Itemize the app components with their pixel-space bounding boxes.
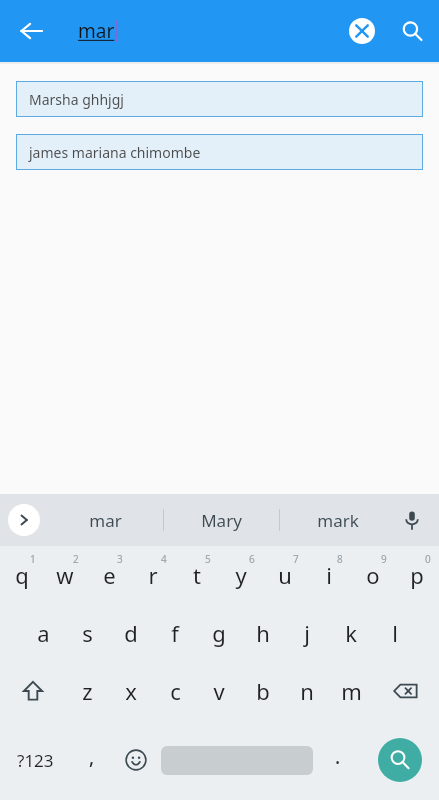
staticText: e: [103, 560, 116, 590]
button[interactable]: Period: [316, 720, 360, 800]
staticText: k: [345, 618, 357, 648]
button[interactable]: Space: [158, 720, 316, 800]
button[interactable]: x: [109, 662, 153, 720]
button[interactable]: a: [21, 604, 65, 662]
button[interactable]: Backspace: [373, 662, 439, 720]
staticText: v: [213, 676, 225, 706]
button[interactable]: p: [395, 546, 439, 604]
staticText: d: [124, 618, 138, 648]
staticText: 7: [293, 552, 299, 566]
staticText: mar: [78, 18, 115, 44]
button[interactable]: d: [109, 604, 153, 662]
staticText: c: [170, 676, 181, 706]
button[interactable]: Clear text: [342, 11, 382, 51]
button[interactable]: z: [65, 662, 109, 720]
staticText: m: [341, 676, 362, 706]
staticText: Marsha ghhjgj: [29, 90, 124, 109]
button[interactable]: mar: [48, 494, 163, 546]
staticText: z: [82, 676, 93, 706]
button[interactable]: v: [197, 662, 241, 720]
staticText: w: [56, 560, 74, 590]
staticText: i: [326, 560, 332, 590]
staticText: t: [193, 560, 201, 590]
staticText: 4: [161, 552, 167, 566]
staticText: o: [366, 560, 380, 590]
button[interactable]: Back: [12, 11, 52, 51]
button[interactable]: g: [197, 604, 241, 662]
staticText: l: [392, 618, 398, 648]
button[interactable]: Expand suggestions: [8, 504, 40, 536]
button[interactable]: h: [241, 604, 285, 662]
staticText: 6: [249, 552, 255, 566]
button[interactable]: b: [241, 662, 285, 720]
button[interactable]: k: [329, 604, 373, 662]
staticText: p: [410, 560, 424, 590]
button[interactable]: Marsha ghhjgj: [16, 81, 423, 117]
staticText: 2: [73, 552, 79, 566]
button[interactable]: c: [153, 662, 197, 720]
staticText: Mary: [201, 509, 242, 532]
staticText: a: [37, 618, 50, 648]
button[interactable]: Emoji: [114, 720, 158, 800]
staticText: 1: [30, 552, 36, 566]
button[interactable]: e: [87, 546, 131, 604]
staticText: g: [212, 618, 226, 648]
button[interactable]: Search: [360, 720, 439, 800]
staticText: 5: [205, 552, 211, 566]
staticText: h: [256, 618, 270, 648]
staticText: y: [235, 560, 247, 590]
staticText: 8: [337, 552, 343, 566]
staticText: 3: [117, 552, 123, 566]
button[interactable]: u: [263, 546, 307, 604]
staticText: 0: [425, 552, 431, 566]
staticText: s: [82, 618, 93, 648]
button[interactable]: s: [65, 604, 109, 662]
staticText: b: [256, 676, 270, 706]
button[interactable]: f: [153, 604, 197, 662]
button[interactable]: mark: [280, 494, 395, 546]
staticText: n: [300, 676, 314, 706]
staticText: q: [15, 560, 29, 590]
button[interactable]: james mariana chimombe: [16, 134, 423, 170]
staticText: ?123: [17, 749, 54, 772]
button[interactable]: y: [219, 546, 263, 604]
button[interactable]: i: [307, 546, 351, 604]
button[interactable]: l: [373, 604, 417, 662]
button[interactable]: Mary: [164, 494, 279, 546]
button[interactable]: Shift: [0, 662, 65, 720]
staticText: mark: [317, 509, 359, 532]
button[interactable]: t: [175, 546, 219, 604]
staticText: r: [148, 560, 158, 590]
button[interactable]: w: [43, 546, 87, 604]
staticText: mar: [89, 509, 122, 532]
staticText: x: [125, 676, 137, 706]
staticText: f: [171, 618, 179, 648]
staticText: .: [335, 744, 341, 770]
button[interactable]: j: [285, 604, 329, 662]
button[interactable]: ?123: [0, 720, 70, 800]
button[interactable]: Comma: [70, 720, 114, 800]
button[interactable]: m: [329, 662, 373, 720]
staticText: 9: [381, 552, 387, 566]
button[interactable]: Search: [391, 10, 433, 52]
staticText: james mariana chimombe: [29, 143, 201, 162]
button[interactable]: r: [131, 546, 175, 604]
staticText: ,: [89, 744, 95, 770]
button[interactable]: q: [0, 546, 43, 604]
button[interactable]: o: [351, 546, 395, 604]
button[interactable]: Voice input: [393, 501, 431, 539]
staticText: j: [304, 618, 310, 648]
button[interactable]: n: [285, 662, 329, 720]
staticText: u: [278, 560, 292, 590]
